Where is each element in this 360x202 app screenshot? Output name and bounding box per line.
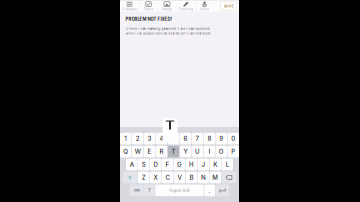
button[interactable]: 9: [216, 133, 227, 144]
staticText: H: [189, 161, 194, 168]
staticText: L: [226, 161, 229, 168]
staticText: Image: [162, 7, 172, 11]
button[interactable]: H: [186, 159, 197, 170]
button[interactable]: Z: [138, 172, 149, 183]
button[interactable]: D: [150, 159, 161, 170]
button[interactable]: C: [162, 172, 173, 183]
button[interactable]: U: [192, 146, 203, 157]
staticText: 2: [136, 135, 140, 142]
staticText: 0: [231, 135, 235, 142]
staticText: S: [142, 161, 146, 168]
staticText: 6: [183, 135, 187, 142]
staticText: 4: [160, 135, 164, 142]
staticText: R: [160, 148, 164, 155]
staticText: A: [130, 161, 134, 168]
staticText: T: [148, 187, 151, 193]
staticText: V: [177, 174, 181, 181]
button[interactable]: Voice: [196, 1, 213, 11]
staticText: J: [201, 161, 205, 168]
button[interactable]: Q: [120, 146, 131, 157]
button[interactable]: Text options: [144, 185, 155, 196]
staticText: W: [135, 148, 141, 155]
button[interactable]: G: [174, 159, 185, 170]
button[interactable]: Symbols: [130, 185, 144, 196]
button[interactable]: S: [138, 159, 149, 170]
staticText: M: [212, 174, 218, 181]
staticText: F: [165, 161, 169, 168]
staticText: C: [166, 174, 170, 181]
staticText: O: [219, 148, 224, 155]
staticText: .: [209, 187, 211, 194]
staticText: Category: [122, 7, 137, 11]
button[interactable]: Image: [158, 1, 176, 11]
staticText: 9: [219, 135, 223, 142]
button[interactable]: Return: [215, 185, 229, 196]
staticText: Voice: [200, 7, 209, 11]
button[interactable]: V: [174, 172, 185, 183]
button[interactable]: Category: [120, 1, 139, 11]
button[interactable]: T: [168, 146, 179, 157]
staticText: 8: [207, 135, 211, 142]
button[interactable]: Delete: [222, 172, 236, 183]
button[interactable]: R: [156, 146, 167, 157]
staticText: I: [208, 148, 210, 155]
button[interactable]: 8: [204, 133, 215, 144]
staticText: T: [171, 148, 175, 155]
staticText: PROBLEM NOT FIXED!: [125, 16, 171, 22]
button[interactable]: 3: [144, 133, 155, 144]
staticText: SAVE: [223, 4, 233, 8]
button[interactable]: E: [144, 146, 155, 157]
staticText: P: [231, 148, 235, 155]
button[interactable]: N: [198, 172, 209, 183]
button[interactable]: J: [198, 159, 209, 170]
button[interactable]: Tasks: [139, 1, 157, 11]
button[interactable]: 6: [180, 133, 191, 144]
button[interactable]: A: [126, 159, 137, 170]
button[interactable]: 2: [132, 133, 143, 144]
staticText: hi there i have a samsung galaxy note 5 …: [125, 27, 210, 30]
button[interactable]: 0: [228, 133, 239, 144]
button[interactable]: Y: [180, 146, 191, 157]
button[interactable]: K: [210, 159, 221, 170]
staticText: Drawing: [179, 7, 193, 11]
staticText: English (US): [169, 188, 189, 192]
button[interactable]: F: [162, 159, 173, 170]
staticText: Q: [123, 148, 128, 155]
staticText: 1: [124, 135, 127, 142]
staticText: D: [154, 161, 158, 168]
button[interactable]: SAVE: [220, 2, 236, 10]
staticText: 7: [195, 135, 199, 142]
staticText: K: [213, 161, 217, 168]
button[interactable]: O: [216, 146, 227, 157]
button[interactable]: Space: [155, 185, 204, 196]
staticText: When i call people they can hear me but …: [125, 32, 210, 35]
staticText: 3: [148, 135, 152, 142]
staticText: U: [195, 148, 200, 155]
staticText: Tasks: [143, 7, 153, 11]
staticText: Y: [183, 148, 187, 155]
button[interactable]: 7: [192, 133, 203, 144]
staticText: N: [201, 174, 206, 181]
button[interactable]: Shift: [123, 172, 137, 183]
staticText: !#©: [134, 188, 140, 193]
button[interactable]: Drawing: [176, 1, 195, 11]
button[interactable]: P: [228, 146, 239, 157]
button[interactable]: 4: [156, 133, 167, 144]
button[interactable]: Period: [204, 185, 215, 196]
staticText: G: [177, 161, 182, 168]
button[interactable]: M: [210, 172, 221, 183]
button[interactable]: L: [222, 159, 233, 170]
staticText: X: [154, 174, 158, 181]
button[interactable]: X: [150, 172, 161, 183]
button[interactable]: W: [132, 146, 143, 157]
button[interactable]: 1: [120, 133, 131, 144]
staticText: B: [189, 174, 193, 181]
button[interactable]: B: [186, 172, 197, 183]
button[interactable]: I: [204, 146, 215, 157]
staticText: Z: [142, 174, 146, 181]
staticText: E: [148, 148, 152, 155]
